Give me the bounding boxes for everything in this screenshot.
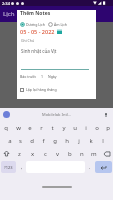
button[interactable]: p [102,121,113,134]
button[interactable]: u [69,121,80,134]
button[interactable]: n [76,147,88,160]
staticText: o [95,124,99,132]
staticText: f [42,137,45,145]
staticText: Ghi Chú [21,38,35,43]
staticText: h [65,137,69,145]
staticText: Âm Lịch [54,22,67,27]
button[interactable]: Shift [0,147,13,160]
staticText: j [78,137,80,145]
button[interactable]: z [13,147,26,160]
button[interactable]: s [15,134,26,147]
staticText: l [102,137,104,145]
button[interactable]: o [91,121,102,134]
button[interactable]: c [39,147,52,160]
staticText: k [89,137,93,145]
button[interactable]: Enter [95,161,112,173]
staticText: Dương Lịch [26,22,45,27]
staticText: Ngày [48,74,57,79]
button[interactable]: v [52,147,64,160]
staticText: e [28,124,32,132]
staticText: Báo trước [20,74,37,79]
button[interactable]: t [47,121,58,134]
button[interactable]: r [36,121,47,134]
button[interactable]: f [37,134,49,147]
staticText: s [19,137,22,145]
staticText: x [31,150,35,158]
button[interactable]: q [0,121,12,134]
button[interactable]: 05 - 05 - 2022 [20,28,62,35]
staticText: d [30,137,34,145]
button[interactable]: Lặp lại hàng tháng [20,87,57,92]
button[interactable]: x [26,147,39,160]
button[interactable]: Xóa [100,147,113,160]
staticText: 1 [41,74,44,79]
button[interactable]: e [24,121,36,134]
button[interactable]: g [49,134,61,147]
button[interactable]: j [73,134,85,147]
staticText: Lặp lại hàng tháng [26,87,57,92]
staticText: v [56,150,60,158]
button[interactable]: . [85,160,94,174]
staticText: y [62,124,66,132]
staticText: w [16,124,21,132]
other: Chọn ngày [57,29,62,34]
button[interactable]: w [12,121,24,134]
button[interactable]: Nhập bằng giọng nói [104,113,108,117]
staticText: n [80,150,84,158]
button[interactable]: k [85,134,97,147]
button[interactable]: b [64,147,76,160]
button[interactable]: a [4,134,15,147]
staticText: z [18,150,21,158]
staticText: u [73,124,77,132]
staticText: ?123 [4,165,13,170]
button[interactable]: d [26,134,37,147]
staticText: a [8,137,12,145]
staticText: Sinh nhật của Vịt [21,48,57,54]
button[interactable]: l [97,134,109,147]
staticText: Thêm Notes [20,10,51,17]
button[interactable]: i [80,121,91,134]
staticText: Lịch [3,10,15,18]
button[interactable]: m [88,147,100,160]
staticText: i [85,124,87,132]
staticText: 05 - 05 - 2022 [20,28,55,35]
button[interactable]: ?123 [1,161,16,173]
staticText: Mobilelab Intl... [42,112,72,117]
staticText: , [21,164,23,171]
button[interactable]: Dương Lịch [20,22,45,27]
staticText: g [53,137,57,145]
staticText: c [44,150,47,158]
button[interactable]: h [61,134,73,147]
button[interactable]: Âm Lịch [48,22,67,27]
button[interactable]: Trợ lý [3,111,10,118]
staticText: t [51,124,54,132]
staticText: 2:34 [2,1,10,6]
staticText: q [4,124,8,132]
staticText: b [68,150,72,158]
staticText: p [106,124,110,132]
button[interactable]: y [58,121,69,134]
staticText: m [91,150,97,158]
staticText: r [40,124,43,132]
button[interactable]: , [17,160,26,174]
staticText: . [89,164,91,171]
